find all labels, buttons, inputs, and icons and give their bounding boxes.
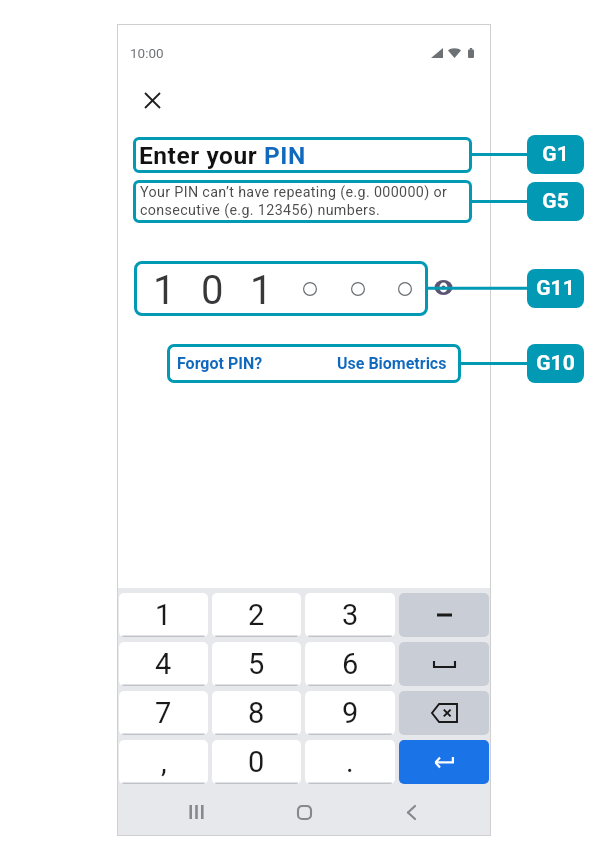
button[interactable]: G5 bbox=[527, 182, 584, 221]
staticText: 0 bbox=[248, 745, 265, 779]
staticText: Forgot PIN? bbox=[177, 354, 263, 373]
button[interactable]: Use Biometrics bbox=[337, 344, 447, 383]
staticText: Enter your PIN bbox=[139, 141, 306, 170]
button[interactable]: 4 bbox=[119, 642, 208, 686]
button[interactable]: G10 bbox=[527, 344, 584, 383]
button[interactable]: Enter bbox=[399, 740, 489, 784]
staticText: 1 bbox=[250, 267, 273, 314]
staticText: G11 bbox=[536, 276, 575, 301]
staticText: 5 bbox=[248, 647, 265, 681]
button[interactable]: 7 bbox=[119, 691, 208, 735]
staticText: 8 bbox=[248, 696, 265, 730]
button[interactable]: Dash bbox=[399, 593, 489, 637]
staticText: Your PIN can’t have repeating (e.g. 0000… bbox=[140, 184, 465, 219]
staticText: 0 bbox=[201, 267, 224, 314]
button[interactable]: G11 bbox=[527, 269, 584, 308]
button[interactable]: 2 bbox=[212, 593, 301, 637]
staticText: 3 bbox=[342, 598, 359, 632]
staticText: 2 bbox=[248, 598, 265, 632]
button[interactable]: 1 bbox=[119, 593, 208, 637]
staticText: 7 bbox=[155, 696, 172, 730]
button[interactable]: Close bbox=[132, 80, 172, 120]
button[interactable]: 0 bbox=[212, 740, 301, 784]
button[interactable]: Back bbox=[389, 790, 433, 834]
button[interactable]: . bbox=[305, 740, 395, 784]
staticText: 10:00 bbox=[130, 45, 164, 61]
button[interactable]: Backspace bbox=[399, 691, 489, 735]
staticText: Use Biometrics bbox=[337, 354, 447, 373]
button[interactable]: Space bbox=[399, 642, 489, 686]
staticText: 9 bbox=[342, 696, 359, 730]
staticText: G1 bbox=[542, 142, 569, 167]
staticText: , bbox=[161, 745, 167, 779]
button[interactable]: 6 bbox=[305, 642, 395, 686]
button[interactable]: Home bbox=[282, 790, 326, 834]
button[interactable]: Forgot PIN? bbox=[177, 344, 263, 383]
button[interactable]: 9 bbox=[305, 691, 395, 735]
staticText: 6 bbox=[342, 647, 359, 681]
staticText: G5 bbox=[542, 189, 569, 214]
staticText: G10 bbox=[536, 351, 575, 376]
staticText: 4 bbox=[155, 647, 172, 681]
button[interactable]: Recents bbox=[174, 790, 218, 834]
button[interactable]: 8 bbox=[212, 691, 301, 735]
button[interactable]: , bbox=[119, 740, 208, 784]
staticText: . bbox=[346, 745, 354, 779]
button[interactable]: 3 bbox=[305, 593, 395, 637]
staticText: 1 bbox=[155, 598, 172, 632]
staticText: 1 bbox=[153, 267, 176, 314]
button[interactable]: 5 bbox=[212, 642, 301, 686]
button[interactable]: G1 bbox=[527, 135, 584, 174]
